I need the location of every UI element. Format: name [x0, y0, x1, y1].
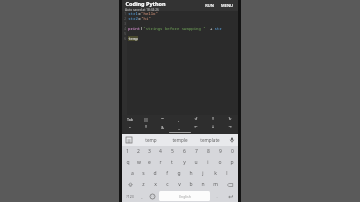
staticText: Tab — [127, 117, 133, 122]
button[interactable]: Emoji — [147, 190, 158, 202]
button[interactable]: "" — [154, 115, 170, 123]
button[interactable]: _ — [170, 123, 187, 131]
button[interactable]: m — [210, 180, 220, 189]
button[interactable]: j — [198, 169, 208, 178]
button[interactable]: ← — [187, 123, 204, 131]
staticText: ↑ — [211, 117, 215, 121]
staticText: x — [154, 181, 157, 188]
staticText: RUN — [205, 3, 214, 8]
button[interactable]: ↑ — [204, 115, 221, 123]
staticText: q — [126, 159, 130, 166]
button[interactable]: t — [167, 158, 177, 167]
button[interactable]: RUN — [203, 2, 216, 9]
staticText: d — [153, 170, 157, 177]
staticText: 2 — [124, 17, 126, 21]
button[interactable]: temple — [165, 134, 195, 146]
button[interactable]: 2 — [134, 147, 143, 156]
button[interactable]: ↻ — [221, 115, 238, 123]
button[interactable]: temp — [136, 134, 165, 146]
button[interactable]: b — [186, 180, 196, 189]
button[interactable]: o — [215, 158, 225, 167]
staticText: ( — [140, 26, 143, 31]
button[interactable]: d — [150, 169, 160, 178]
staticText: || — [144, 117, 148, 122]
button[interactable]: 7 — [191, 147, 201, 156]
button[interactable]: & — [154, 123, 170, 131]
button[interactable]: 6 — [179, 147, 189, 156]
button[interactable]: 0 — [227, 147, 237, 156]
button[interactable]: n — [198, 180, 208, 189]
staticText: 4 — [159, 148, 162, 155]
button[interactable]: ?123 — [122, 190, 137, 202]
button[interactable]: 5 — [167, 147, 177, 156]
button[interactable]: h — [186, 169, 196, 178]
staticText: n — [201, 181, 205, 188]
button[interactable]: , — [170, 115, 187, 123]
button[interactable]: 1 — [123, 147, 132, 156]
button[interactable]: k — [210, 169, 220, 178]
button[interactable]: Shift — [123, 180, 137, 189]
button[interactable]: v — [174, 180, 184, 189]
staticText: k — [214, 170, 217, 177]
button[interactable]: ↓ — [204, 123, 221, 131]
button[interactable]: i — [203, 158, 213, 167]
staticText: j — [202, 170, 204, 177]
button[interactable]: 9 — [215, 147, 225, 156]
staticText: h — [189, 170, 193, 177]
button[interactable]: p — [227, 158, 237, 167]
button[interactable]: u — [191, 158, 201, 167]
staticText: ↓ — [211, 125, 215, 129]
staticText: 2 — [137, 148, 140, 155]
staticText: Coding Python — [125, 0, 166, 7]
staticText: g — [177, 170, 181, 177]
staticText: ?123 — [126, 194, 134, 199]
button[interactable]: English — [159, 191, 210, 201]
staticText: English — [179, 194, 191, 199]
button[interactable]: Voice input — [225, 134, 238, 146]
button[interactable]: g — [174, 169, 184, 178]
staticText: MENU — [221, 3, 233, 8]
button[interactable]: Enter — [222, 190, 238, 202]
button[interactable]: MENU — [219, 2, 235, 9]
button[interactable]: 8 — [203, 147, 213, 156]
button[interactable]: → — [221, 123, 238, 131]
button[interactable]: z — [139, 180, 148, 189]
button[interactable]: ↺ — [187, 115, 204, 123]
button[interactable]: e — [145, 158, 154, 167]
button[interactable]: template — [195, 134, 225, 146]
staticText: str — [214, 26, 222, 31]
staticText: c — [166, 181, 169, 188]
staticText: y — [183, 159, 186, 166]
button[interactable]: x — [150, 180, 160, 189]
staticText: o — [218, 159, 222, 166]
staticText: "hello" — [141, 11, 158, 16]
staticText: m — [213, 181, 218, 188]
button[interactable]: Tab — [122, 115, 138, 123]
staticText: i — [207, 159, 209, 166]
staticText: temple — [172, 137, 188, 143]
button[interactable]: 4 — [156, 147, 165, 156]
staticText: a — [131, 170, 134, 177]
button[interactable]: q — [123, 158, 132, 167]
staticText: r — [159, 159, 162, 166]
staticText: "" — [161, 117, 164, 122]
button[interactable]: || — [138, 115, 154, 123]
staticText: ↻ — [228, 117, 232, 121]
button[interactable]: ↑ — [138, 123, 154, 131]
button[interactable]: Backspace — [222, 180, 237, 189]
button[interactable]: w — [134, 158, 143, 167]
button[interactable]: 3 — [145, 147, 154, 156]
button[interactable]: f — [162, 169, 172, 178]
button[interactable]: a — [128, 169, 137, 178]
button[interactable]: r — [156, 158, 165, 167]
staticText: t — [171, 159, 173, 166]
staticText: ↺ — [194, 117, 198, 121]
button[interactable]: Clipboard — [122, 134, 136, 146]
button[interactable]: l — [222, 169, 232, 178]
button[interactable]: y — [179, 158, 189, 167]
button[interactable]: c — [162, 180, 172, 189]
button[interactable]: s — [139, 169, 148, 178]
button[interactable]: • — [122, 123, 138, 131]
